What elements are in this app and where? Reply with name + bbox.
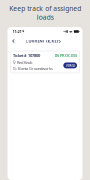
staticText: DETAILS bbox=[66, 64, 75, 67]
staticText: IN PROCESS bbox=[55, 53, 77, 58]
staticText: CURRENT TICKETS bbox=[25, 38, 60, 44]
staticText: Banta Groundworks bbox=[18, 66, 53, 71]
staticText: Red Knob bbox=[17, 60, 32, 65]
button[interactable]: Ticket# 107800 bbox=[10, 51, 79, 73]
staticText: Keep track of assigned loads bbox=[9, 4, 81, 22]
staticText: Ticket# 107800 bbox=[13, 53, 40, 58]
button[interactable]: Back bbox=[9, 36, 17, 45]
staticText: 11:21 bbox=[12, 29, 21, 34]
